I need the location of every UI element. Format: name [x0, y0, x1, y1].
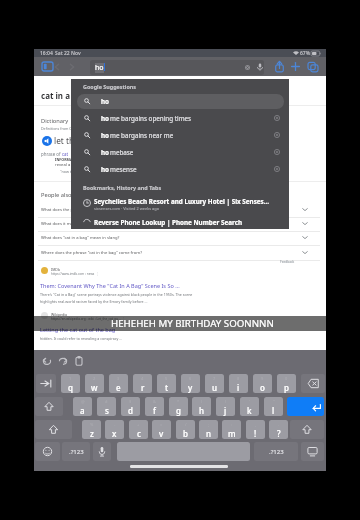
- button[interactable]: ;: [199, 420, 218, 439]
- button[interactable]: $: [121, 397, 140, 416]
- staticText: r: [141, 382, 145, 393]
- staticText: Sat 22 Nov: [55, 50, 81, 57]
- button[interactable]: What does "cat in a bag" mean in slang?: [38, 231, 320, 245]
- button[interactable]: Where does the phrase "cat in the bag" c…: [38, 246, 320, 260]
- staticText: c: [137, 428, 141, 439]
- button[interactable]: Back: [52, 62, 62, 72]
- button[interactable]: Tab: [36, 374, 56, 393]
- button[interactable]: What does the phrase "cat in a bag" mean…: [38, 203, 320, 217]
- staticText: 9: [261, 376, 264, 381]
- button[interactable]: Voice search: [257, 63, 263, 71]
- button[interactable]: 8: [229, 374, 248, 393]
- button[interactable]: Paste: [74, 356, 84, 366]
- button[interactable]: Reverse Phone Lookup | Phone Number Sear…: [77, 217, 284, 228]
- button[interactable]: -: [105, 420, 124, 439]
- button[interactable]: Seychelles Beach Resort and Luxury Hotel…: [77, 196, 284, 215]
- staticText: 8: [237, 376, 240, 381]
- staticText: s: [105, 405, 109, 416]
- button[interactable]: =: [152, 420, 171, 439]
- button[interactable]: %: [82, 420, 101, 439]
- staticText: 2: [93, 376, 96, 381]
- button[interactable]: ho: [77, 128, 284, 143]
- button[interactable]: @: [73, 397, 92, 416]
- button[interactable]: Clear text: [245, 65, 250, 70]
- button[interactable]: 3: [109, 374, 128, 393]
- button[interactable]: Show sidebar: [42, 62, 53, 71]
- staticText: There's "Cat in a Bag" scene portrays vi…: [40, 292, 193, 297]
- staticText: x: [112, 428, 117, 439]
- button[interactable]: Return: [287, 397, 324, 416]
- button[interactable]: Backspace: [301, 374, 325, 393]
- button[interactable]: Shift: [290, 420, 324, 439]
- button[interactable]: +: [129, 420, 148, 439]
- button[interactable]: 1: [61, 374, 80, 393]
- button[interactable]: 7: [205, 374, 224, 393]
- staticText: cat in a bag: [41, 90, 87, 101]
- button[interactable]: ho: [77, 111, 284, 126]
- button[interactable]: Emoji: [35, 442, 60, 461]
- staticText: 16:04: [40, 50, 53, 57]
- button[interactable]: ho: [90, 60, 264, 75]
- staticText: "now that show has let the cat out of th…: [60, 169, 142, 174]
- staticText: ho: [95, 63, 104, 73]
- button[interactable]: *: [169, 397, 188, 416]
- staticText: Seychelles Beach Resort and Luxury Hotel…: [94, 197, 270, 206]
- staticText: What does "cat in a bag" mean in slang?: [41, 235, 120, 241]
- button[interactable]: #: [97, 397, 116, 416]
- staticText: y: [188, 382, 193, 393]
- staticText: me bargains near me: [110, 131, 174, 140]
- staticText: let the cat out of the bag: [54, 135, 150, 146]
- button[interactable]: ': [240, 397, 259, 416]
- staticText: u: [212, 382, 218, 393]
- button[interactable]: &: [145, 397, 164, 416]
- button[interactable]: 0: [277, 374, 296, 393]
- staticText: ho: [101, 148, 110, 157]
- button[interactable]: Caps lock: [35, 397, 63, 416]
- button[interactable]: ho: [77, 145, 284, 160]
- staticText: e: [116, 382, 121, 393]
- button[interactable]: Dictate: [93, 442, 111, 461]
- button[interactable]: ho: [77, 162, 284, 177]
- staticText: g: [176, 405, 181, 416]
- button[interactable]: (: [192, 397, 211, 416]
- staticText: .?123: [69, 448, 84, 456]
- button[interactable]: 6: [181, 374, 200, 393]
- button[interactable]: Show tabs: [308, 62, 318, 72]
- staticText: What does it mean to let the cat out of …: [41, 221, 135, 227]
- staticText: !: [254, 428, 257, 439]
- staticText: %: [90, 422, 94, 427]
- button[interactable]: :: [222, 420, 241, 439]
- staticText: o: [260, 382, 265, 393]
- button[interactable]: ): [216, 397, 235, 416]
- button[interactable]: .?123: [62, 442, 90, 461]
- staticText: z: [90, 428, 94, 439]
- button[interactable]: Undo: [42, 356, 52, 366]
- button[interactable]: 5: [157, 374, 176, 393]
- button[interactable]: Redo: [58, 356, 68, 366]
- button[interactable]: /: [176, 420, 195, 439]
- staticText: t: [165, 382, 169, 393]
- button[interactable]: 4: [133, 374, 152, 393]
- button[interactable]: ,: [246, 420, 265, 439]
- button[interactable]: Shift: [35, 420, 72, 439]
- button[interactable]: 9: [253, 374, 272, 393]
- button[interactable]: Share: [275, 61, 284, 72]
- button[interactable]: .: [269, 420, 288, 439]
- staticText: ho: [101, 131, 110, 140]
- button[interactable]: 2: [85, 374, 104, 393]
- button[interactable]: New tab: [291, 62, 300, 71]
- button[interactable]: ": [264, 397, 283, 416]
- button[interactable]: What does it mean to let the cat out of …: [38, 217, 320, 231]
- button[interactable]: .?123: [254, 442, 298, 461]
- button[interactable]: ho: [77, 94, 284, 109]
- staticText: 67%: [300, 50, 311, 57]
- button[interactable]: Hide keyboard: [301, 442, 324, 461]
